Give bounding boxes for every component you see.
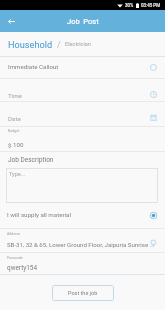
button[interactable]: Back bbox=[3, 13, 19, 29]
staticText: I will supply all material bbox=[7, 211, 71, 218]
staticText: Immediate Callout bbox=[8, 63, 59, 70]
staticText: Date bbox=[8, 115, 21, 122]
staticText: 30% bbox=[125, 3, 134, 8]
button[interactable]: Post the job bbox=[52, 285, 114, 301]
staticText: 03:45 PM bbox=[141, 3, 161, 8]
staticText: qwerty154 bbox=[7, 264, 38, 272]
staticText: Job Description bbox=[8, 156, 54, 164]
staticText: Budget bbox=[8, 129, 20, 133]
staticText: Time bbox=[8, 92, 22, 99]
staticText: Address bbox=[7, 232, 21, 236]
staticText: SB-31, 32 & 65, Lower Ground Floor, Jaip… bbox=[7, 241, 155, 248]
staticText: / bbox=[57, 39, 61, 50]
button[interactable]: Address bbox=[0, 229, 165, 252]
button[interactable]: Type... bbox=[6, 168, 158, 203]
staticText: Job Post bbox=[67, 17, 99, 26]
staticText: Type... bbox=[9, 171, 26, 177]
staticText: Post the job bbox=[68, 290, 98, 296]
button[interactable]: Date bbox=[0, 102, 165, 126]
button[interactable]: I will supply all material bbox=[0, 204, 165, 228]
button[interactable]: Passcode bbox=[0, 253, 165, 274]
button[interactable]: Immediate Callout bbox=[0, 57, 165, 78]
staticText: Electrician bbox=[65, 41, 91, 48]
button[interactable]: Household bbox=[0, 32, 165, 56]
staticText: Passcode bbox=[7, 256, 23, 260]
button[interactable]: Time bbox=[0, 79, 165, 101]
staticText: $ 100 bbox=[8, 141, 24, 148]
button[interactable]: Budget bbox=[0, 127, 165, 151]
staticText: Household bbox=[8, 39, 53, 50]
